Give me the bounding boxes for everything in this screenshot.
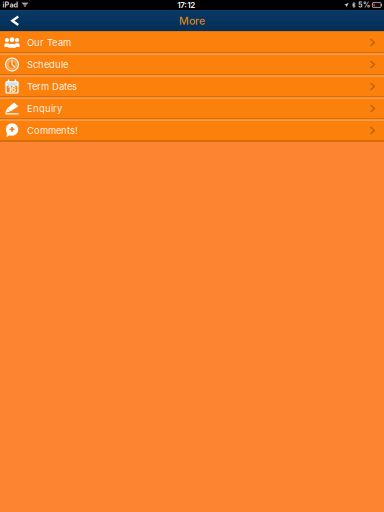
staticText: Our Team [27, 37, 71, 48]
staticText: 17:12 [177, 0, 195, 10]
staticText: 16 [8, 84, 16, 94]
button[interactable]: Enquiry [0, 97, 384, 119]
staticText: Term Dates [27, 81, 77, 92]
button[interactable]: Back [0, 10, 31, 31]
staticText: iPad [2, 1, 18, 9]
staticText: 5% [358, 1, 370, 9]
button[interactable]: Our Team [0, 31, 384, 53]
button[interactable]: Comments! [0, 119, 384, 141]
button[interactable]: 16 [0, 75, 384, 97]
staticText: Schedule [27, 59, 68, 70]
staticText: Comments! [27, 125, 78, 136]
staticText: More [179, 14, 205, 27]
staticText: Enquiry [27, 103, 62, 114]
button[interactable]: Schedule [0, 53, 384, 75]
